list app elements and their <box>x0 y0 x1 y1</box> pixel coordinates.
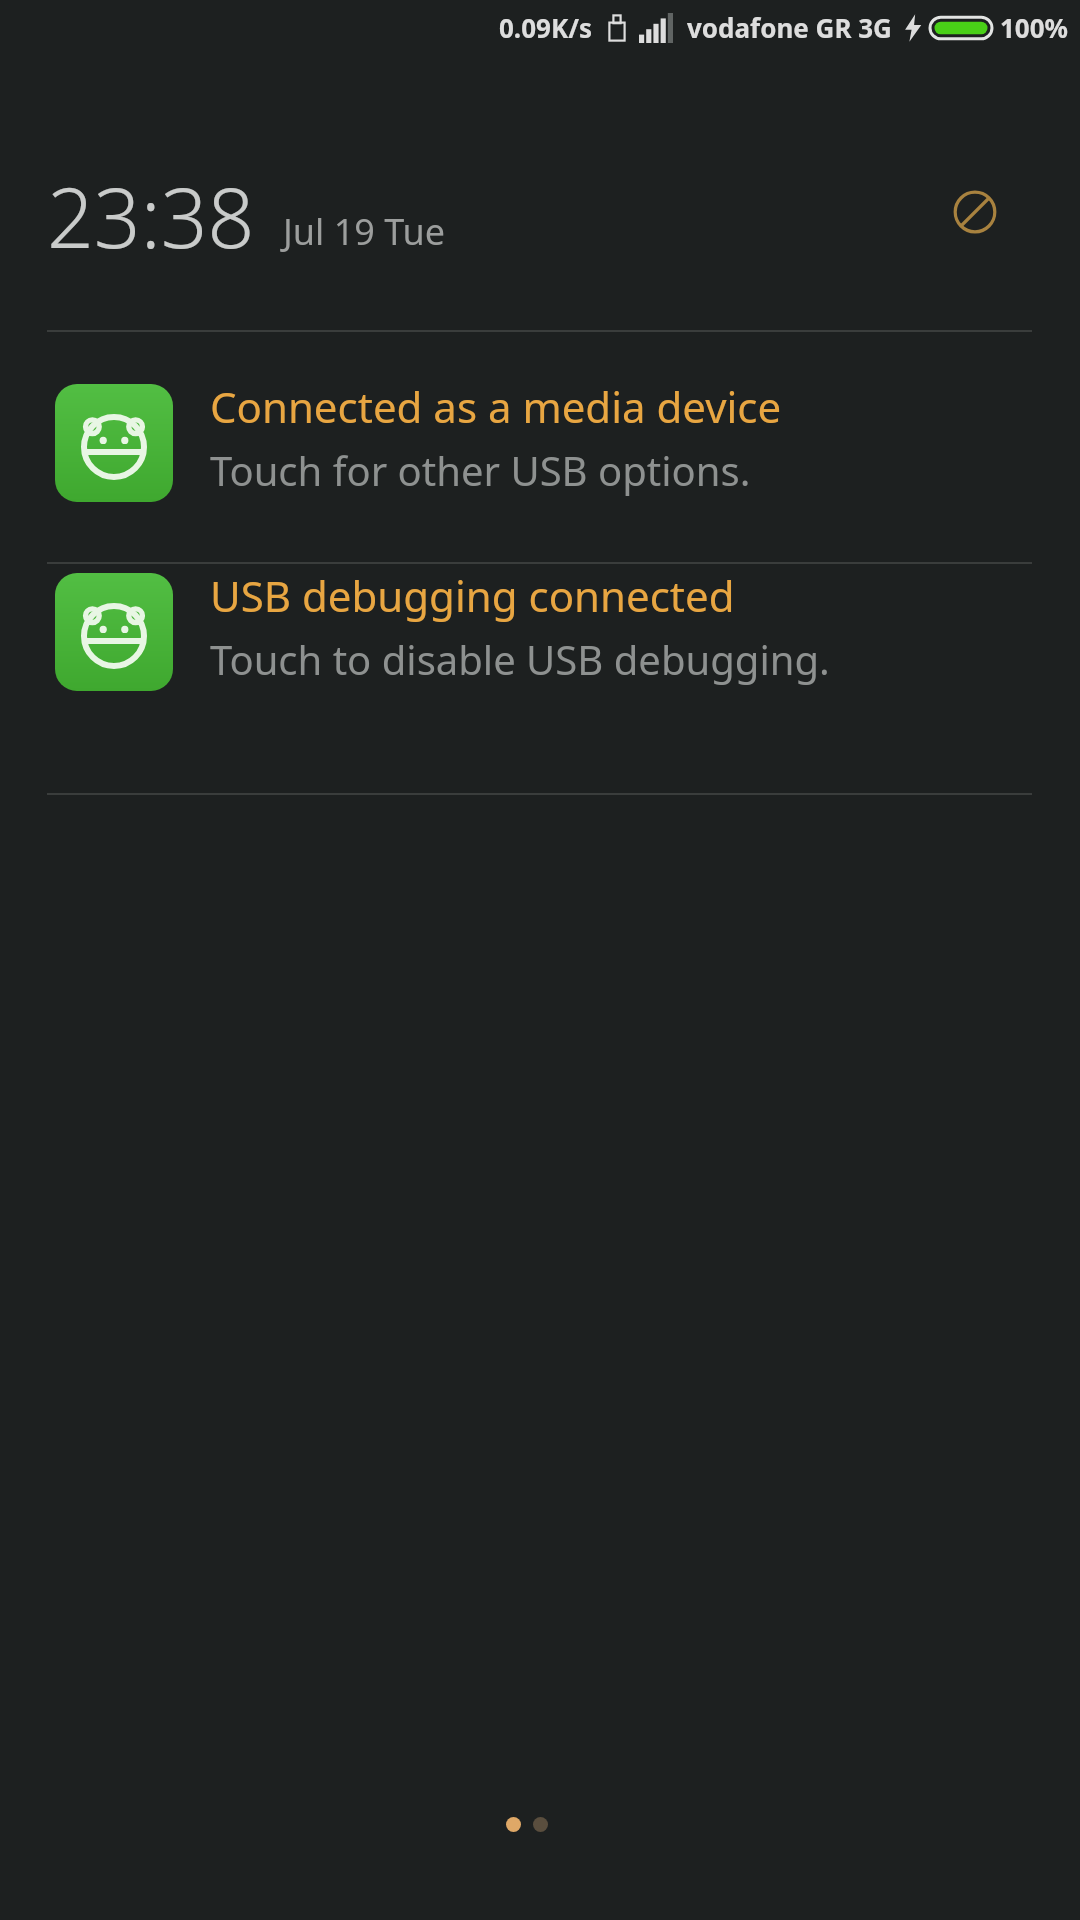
staticText: Connected as a media device <box>210 378 782 435</box>
staticText: Touch for other USB options. <box>210 443 751 497</box>
staticText: Touch to disable USB debugging. <box>210 632 830 686</box>
staticText: USB debugging connected <box>210 567 735 624</box>
button[interactable]: USB debugging connected <box>0 573 1080 753</box>
button[interactable]: Do not disturb <box>943 180 1007 244</box>
staticText: 0.09K/s <box>499 10 593 45</box>
staticText: Jul 19 Tue <box>283 207 446 256</box>
button[interactable]: Connected as a media device <box>0 384 1080 564</box>
staticText: 23:38 <box>47 160 255 272</box>
staticText: vodafone GR 3G <box>687 10 892 45</box>
staticText: 100% <box>1000 10 1069 45</box>
